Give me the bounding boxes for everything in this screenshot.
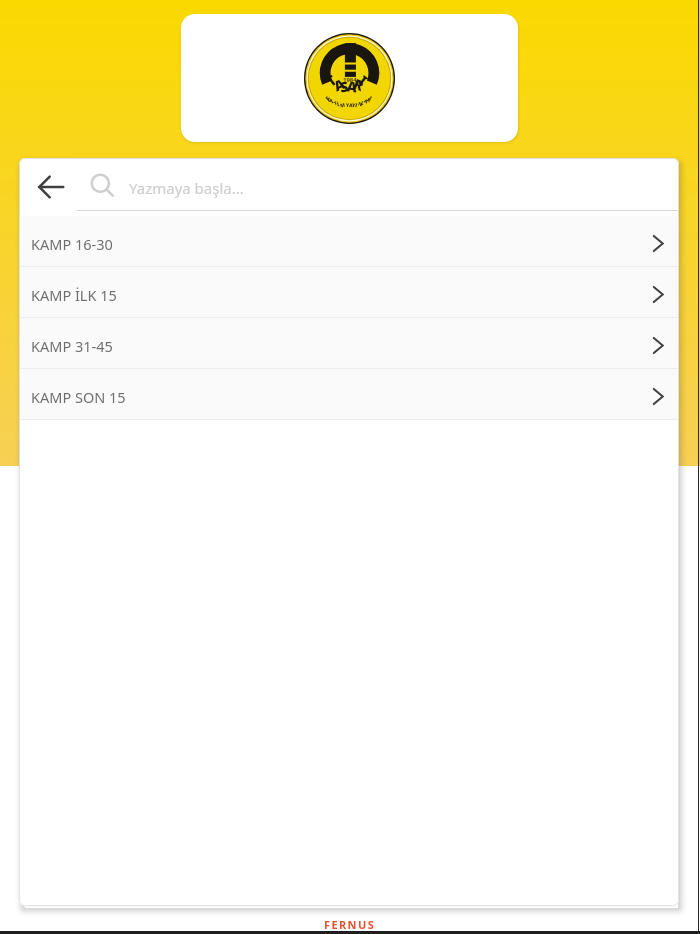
- staticText: S: [339, 76, 350, 96]
- staticText: L: [360, 100, 365, 107]
- staticText: I: [367, 95, 374, 102]
- staticText: T: [333, 100, 338, 107]
- staticText: 1984: [343, 76, 357, 84]
- staticText: KAMP 31-45: [31, 336, 113, 356]
- staticText: Yazmaya başla...: [129, 178, 244, 198]
- staticText: A: [346, 76, 359, 97]
- staticText: A: [363, 97, 369, 106]
- staticText: KAMP SON 15: [31, 387, 126, 407]
- staticText: FERNUS: [324, 917, 376, 931]
- button[interactable]: KAMP 16-30: [19, 216, 679, 267]
- staticText: A: [349, 102, 353, 109]
- staticText: KAMP İLK 15: [31, 285, 117, 305]
- staticText: KAMP 16-30: [31, 234, 113, 254]
- button[interactable]: KAMP 31-45: [19, 318, 679, 369]
- button[interactable]: KAMP SON 15: [19, 369, 679, 420]
- staticText: I: [355, 71, 372, 90]
- other: Search: [82, 167, 122, 207]
- staticText: [343, 102, 345, 109]
- staticText: Ğ: [326, 96, 333, 105]
- staticText: T: [322, 70, 341, 91]
- staticText: E: [324, 95, 331, 102]
- staticText: R: [365, 96, 372, 105]
- staticText: Y: [352, 102, 356, 109]
- button[interactable]: KAMP İLK 15: [19, 267, 679, 318]
- staticText: I: [354, 102, 359, 109]
- staticText: İ: [336, 101, 341, 108]
- button[interactable]: Back: [23, 159, 79, 215]
- staticText: Y: [346, 102, 350, 109]
- staticText: İ: [330, 98, 335, 105]
- staticText: N: [357, 100, 364, 109]
- button[interactable]: Search: [77, 164, 679, 210]
- staticText: A: [331, 74, 348, 95]
- staticText: R: [351, 74, 367, 95]
- staticText: M: [339, 101, 346, 109]
